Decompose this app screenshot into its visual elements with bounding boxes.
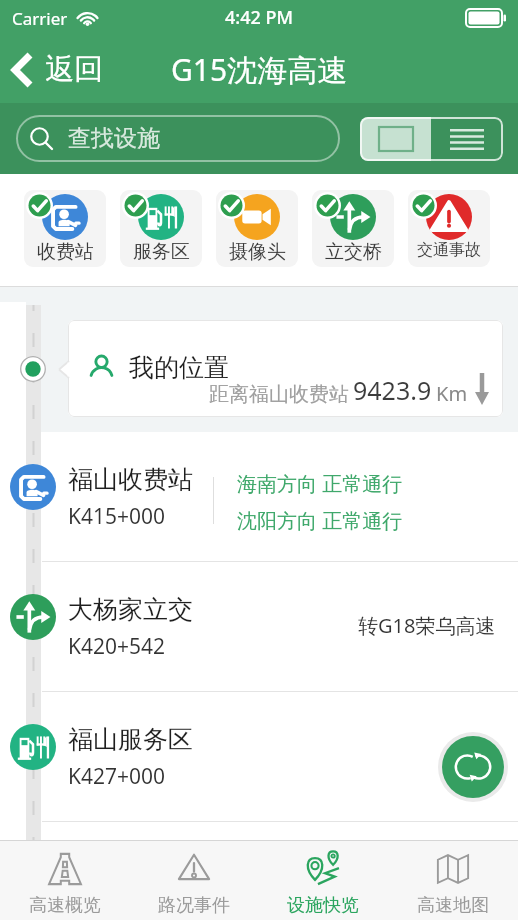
staticText: 设施快览 [287, 894, 359, 917]
staticText: 摄像头 [229, 240, 286, 264]
staticText: 服务区 [133, 240, 190, 264]
staticText: 福山收费站 [68, 464, 193, 495]
staticText: 交通事故 [417, 240, 481, 260]
staticText: 9423.9 [353, 373, 432, 407]
button[interactable]: 摄像头 [216, 190, 298, 267]
button[interactable]: Map view [360, 117, 431, 161]
button[interactable]: 收费站 [24, 190, 106, 267]
button[interactable]: 返回 [11, 51, 103, 88]
staticText: Carrier [12, 7, 68, 30]
staticText: 高速概览 [29, 894, 101, 917]
button[interactable]: 路况事件 [129, 841, 258, 920]
staticText: 福山服务区 [68, 724, 193, 755]
staticText: 转G18荣乌高速 [358, 612, 496, 639]
staticText: G15沈海高速 [171, 49, 348, 90]
staticText: 收费站 [37, 240, 94, 264]
staticText: Km [436, 380, 468, 407]
button[interactable]: 福山收费站 [0, 432, 518, 562]
button[interactable]: 高速概览 [0, 841, 129, 920]
button[interactable]: List view [431, 117, 503, 161]
staticText: 沈阳方向 正常通行 [237, 507, 403, 534]
button[interactable]: Refresh [442, 736, 504, 798]
button[interactable]: 查找设施 [16, 115, 340, 162]
button[interactable]: 高速地图 [388, 841, 518, 920]
staticText: 海南方向 正常通行 [237, 470, 403, 497]
staticText: 立交桥 [325, 240, 382, 264]
staticText: K427+000 [68, 762, 166, 791]
button[interactable]: 立交桥 [312, 190, 394, 267]
staticText: 高速地图 [417, 894, 489, 917]
button[interactable]: 服务区 [120, 190, 202, 267]
button[interactable]: 交通事故 [408, 190, 490, 267]
staticText: 4:42 PM [225, 5, 293, 30]
staticText: K415+000 [68, 502, 166, 531]
staticText: 返回 [45, 51, 103, 88]
staticText: 我的位置 [129, 352, 229, 383]
button[interactable]: 大杨家立交 [0, 562, 518, 692]
button[interactable]: 我的位置 [68, 320, 503, 417]
staticText: 路况事件 [158, 894, 230, 917]
staticText: 距离福山收费站 [209, 382, 349, 407]
button[interactable]: 设施快览 [258, 841, 388, 920]
staticText: 大杨家立交 [68, 594, 193, 625]
staticText: 查找设施 [68, 124, 160, 153]
staticText: K420+542 [68, 632, 166, 661]
button[interactable]: 福山服务区 [0, 692, 518, 822]
